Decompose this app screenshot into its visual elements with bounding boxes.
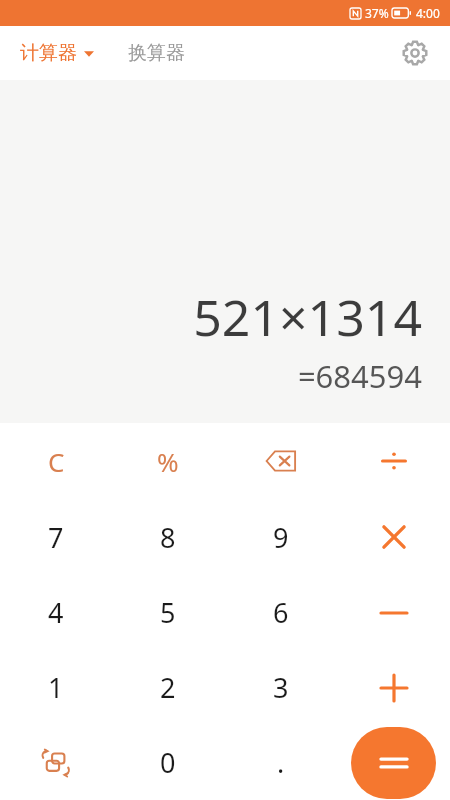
staticText: 4 xyxy=(48,594,64,631)
staticText: 3 xyxy=(273,669,289,706)
button[interactable]: . xyxy=(224,725,337,800)
staticText: 计算器 xyxy=(20,41,77,65)
button[interactable]: 计算器 xyxy=(18,35,96,71)
button[interactable]: Equals xyxy=(351,727,436,799)
staticText: . xyxy=(277,744,285,781)
staticText: 521×1314 xyxy=(193,283,422,351)
staticText: 2 xyxy=(160,669,176,706)
button[interactable]: 换算器 xyxy=(126,35,187,71)
staticText: % xyxy=(157,444,179,479)
button[interactable]: C xyxy=(0,423,112,499)
button[interactable]: Backspace xyxy=(224,423,337,499)
button[interactable]: 0 xyxy=(112,725,224,800)
button[interactable]: 5 xyxy=(112,575,224,650)
button[interactable]: % xyxy=(112,423,224,499)
staticText: 换算器 xyxy=(128,41,185,65)
button[interactable]: 8 xyxy=(112,499,224,575)
staticText: 4:00 xyxy=(416,5,440,21)
staticText: 1 xyxy=(48,669,64,706)
staticText: 8 xyxy=(160,519,176,556)
button[interactable]: 9 xyxy=(224,499,337,575)
button[interactable]: Minus xyxy=(337,575,450,650)
button[interactable]: Plus xyxy=(337,650,450,725)
staticText: =684594 xyxy=(297,355,422,397)
button[interactable]: 7 xyxy=(0,499,112,575)
staticText: 0 xyxy=(160,744,176,781)
button[interactable]: Divide xyxy=(337,423,450,499)
staticText: 37% xyxy=(365,5,389,21)
staticText: C xyxy=(48,444,65,479)
button[interactable]: 6 xyxy=(224,575,337,650)
button[interactable]: 4 xyxy=(0,575,112,650)
staticText: 6 xyxy=(273,594,289,631)
button[interactable]: Convert xyxy=(0,725,112,800)
staticText: 9 xyxy=(273,519,289,556)
button[interactable]: 1 xyxy=(0,650,112,725)
staticText: 5 xyxy=(160,594,176,631)
button[interactable]: 2 xyxy=(112,650,224,725)
button[interactable]: 3 xyxy=(224,650,337,725)
staticText: 7 xyxy=(48,519,64,556)
button[interactable]: Settings xyxy=(394,32,436,74)
button[interactable]: Multiply xyxy=(337,499,450,575)
